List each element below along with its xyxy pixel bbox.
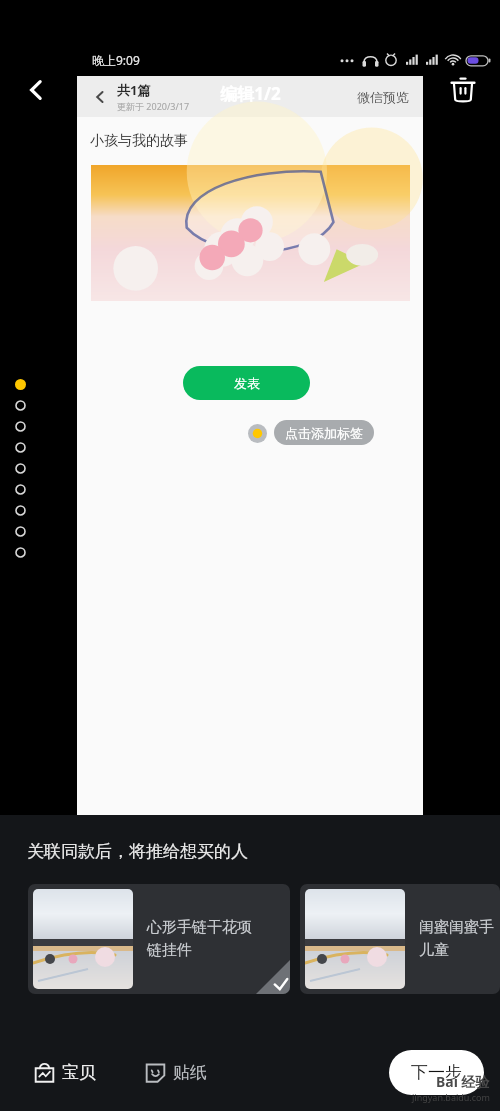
button[interactable]: Delete: [435, 62, 491, 118]
staticText: 宝贝: [62, 1062, 96, 1083]
button[interactable]: Back: [8, 62, 64, 118]
staticText: 微信预览: [357, 89, 409, 105]
staticText: 更新于 2020/3/17: [117, 100, 190, 112]
staticText: 共1篇: [117, 81, 151, 99]
staticText: 贴纸: [173, 1062, 207, 1083]
button[interactable]: 下一步: [389, 1050, 484, 1095]
staticText: Bai 经验: [436, 1072, 490, 1091]
button[interactable]: 闺蜜闺蜜手 儿童: [300, 884, 500, 994]
staticText: jingyan.baidu.com: [412, 1091, 490, 1103]
staticText: 晚上9:09: [92, 52, 140, 68]
button[interactable]: 贴纸: [143, 1054, 209, 1091]
button[interactable]: 发表: [183, 366, 310, 400]
staticText: 编辑1/2: [220, 82, 281, 105]
button[interactable]: Back to list: [87, 84, 113, 110]
staticText: 闺蜜闺蜜手 儿童: [419, 918, 494, 960]
button[interactable]: 点击添加标签: [274, 420, 374, 445]
staticText: 点击添加标签: [285, 425, 363, 441]
staticText: 下一步: [411, 1062, 462, 1083]
button[interactable]: 心形手链干花项 链挂件: [28, 884, 290, 994]
button[interactable]: 微信预览: [355, 85, 411, 109]
staticText: 发表: [234, 375, 260, 391]
staticText: 关联同款后，将推给想买的人: [27, 841, 248, 862]
staticText: 心形手链干花项 链挂件: [147, 918, 252, 960]
button[interactable]: 宝贝: [32, 1054, 98, 1091]
staticText: 小孩与我的故事: [90, 132, 188, 150]
